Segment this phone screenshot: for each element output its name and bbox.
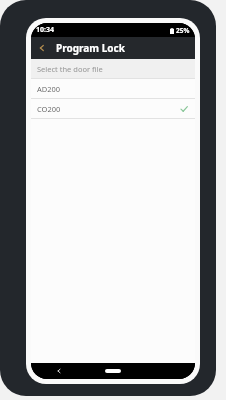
staticText: Select the door file [37, 64, 103, 74]
staticText: CO200 [37, 104, 180, 114]
staticText: 25% [176, 26, 190, 35]
staticText: AD200 [37, 84, 195, 94]
button[interactable]: AD200 [31, 79, 195, 98]
button[interactable]: CO200 [31, 99, 195, 118]
staticText: Program Lock [56, 41, 125, 55]
button[interactable]: Back [53, 365, 65, 377]
button[interactable]: Home [105, 369, 121, 373]
button[interactable]: Back [31, 37, 53, 59]
staticText: 10:34 [36, 25, 54, 35]
